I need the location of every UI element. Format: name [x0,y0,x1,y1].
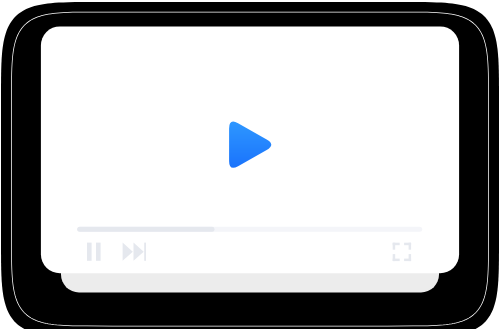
button[interactable]: Fullscreen [388,238,416,266]
button[interactable]: Play [232,125,272,165]
button[interactable]: Skip next [118,238,150,266]
button[interactable]: Seek bar [70,220,430,238]
button[interactable]: Pause [82,238,110,266]
